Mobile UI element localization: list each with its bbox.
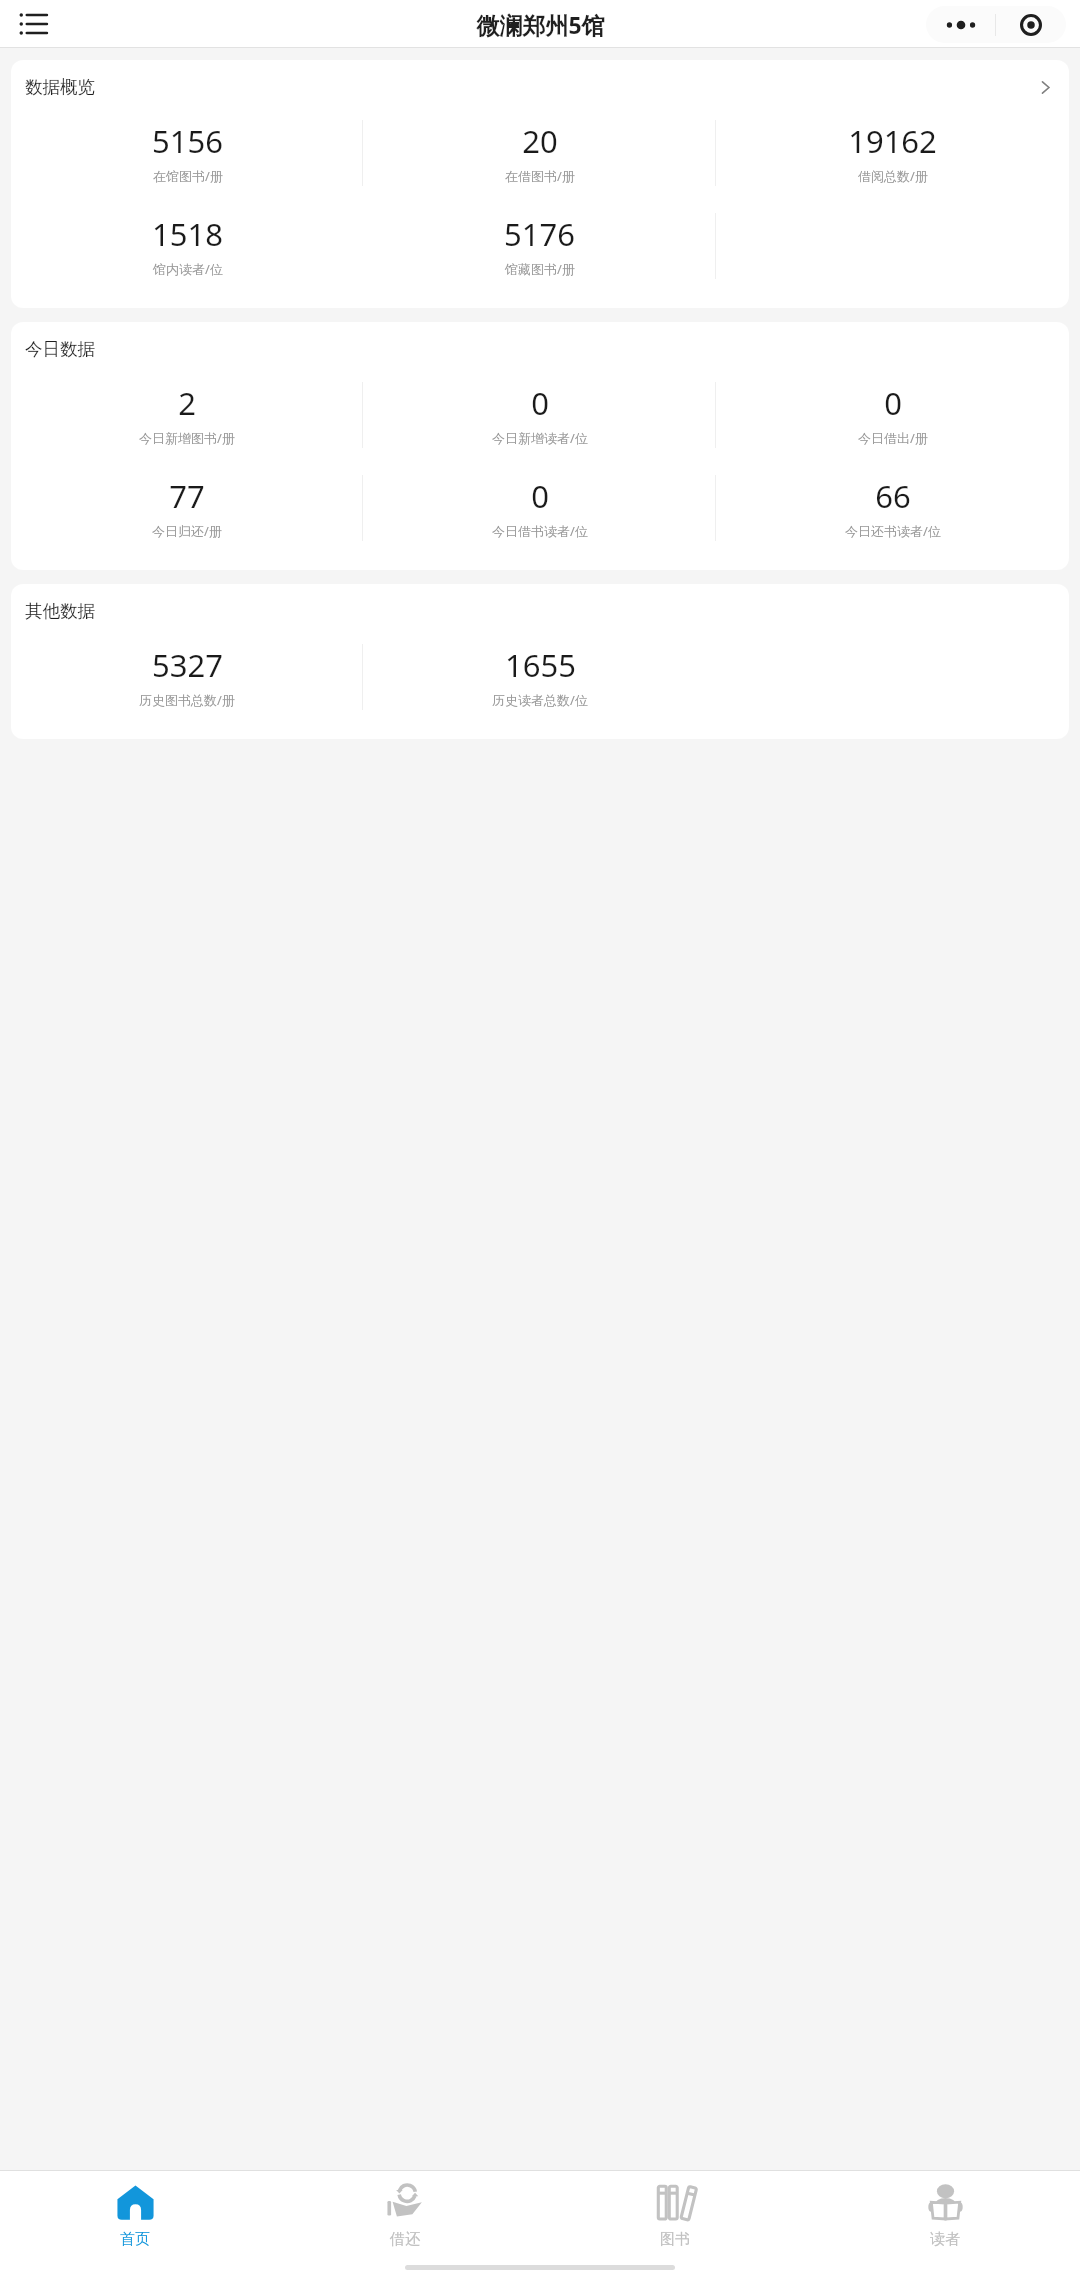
staticText: 其他数据 <box>25 600 95 622</box>
button[interactable]: Menu <box>10 0 58 48</box>
staticText: 5156 <box>152 120 223 162</box>
staticText: 0 <box>531 475 549 517</box>
staticText: 今日归还/册 <box>152 522 222 540</box>
staticText: 历史图书总数/册 <box>139 691 235 709</box>
staticText: 0 <box>884 382 902 424</box>
staticText: 今日数据 <box>25 338 95 360</box>
staticText: 历史读者总数/位 <box>492 691 588 709</box>
staticText: 20 <box>522 120 558 162</box>
staticText: 今日还书读者/位 <box>845 522 941 540</box>
staticText: 借阅总数/册 <box>858 167 928 185</box>
staticText: 今日借书读者/位 <box>492 522 588 540</box>
staticText: 首页 <box>120 2230 150 2249</box>
staticText: 0 <box>531 382 549 424</box>
button[interactable]: 数据概览 <box>11 60 1069 308</box>
staticText: 1518 <box>152 213 223 255</box>
button[interactable]: 今日数据 <box>11 322 1069 570</box>
button[interactable]: 借还 <box>270 2171 540 2259</box>
staticText: 今日借出/册 <box>858 429 928 447</box>
staticText: 77 <box>169 475 205 517</box>
staticText: 读者 <box>930 2230 960 2249</box>
staticText: 66 <box>875 475 911 517</box>
staticText: 今日新增读者/位 <box>492 429 588 447</box>
staticText: 馆藏图书/册 <box>505 260 575 278</box>
staticText: 借还 <box>390 2230 420 2249</box>
staticText: 图书 <box>660 2230 690 2249</box>
staticText: 2 <box>178 382 196 424</box>
button[interactable]: 其他数据 <box>11 584 1069 739</box>
staticText: 在馆图书/册 <box>153 167 223 185</box>
button[interactable]: Close <box>996 6 1066 43</box>
staticText: 数据概览 <box>25 76 95 98</box>
staticText: 5176 <box>504 213 575 255</box>
button[interactable]: 读者 <box>810 2171 1080 2259</box>
button[interactable]: 首页 <box>0 2171 270 2259</box>
staticText: 1655 <box>505 644 576 686</box>
button[interactable]: 图书 <box>540 2171 810 2259</box>
staticText: 5327 <box>152 644 223 686</box>
staticText: 微澜郑州5馆 <box>476 9 605 40</box>
staticText: 19162 <box>848 120 937 162</box>
staticText: 今日新增图书/册 <box>139 429 235 447</box>
staticText: 在借图书/册 <box>505 167 575 185</box>
staticText: 馆内读者/位 <box>153 260 223 278</box>
button[interactable]: More <box>926 6 995 43</box>
